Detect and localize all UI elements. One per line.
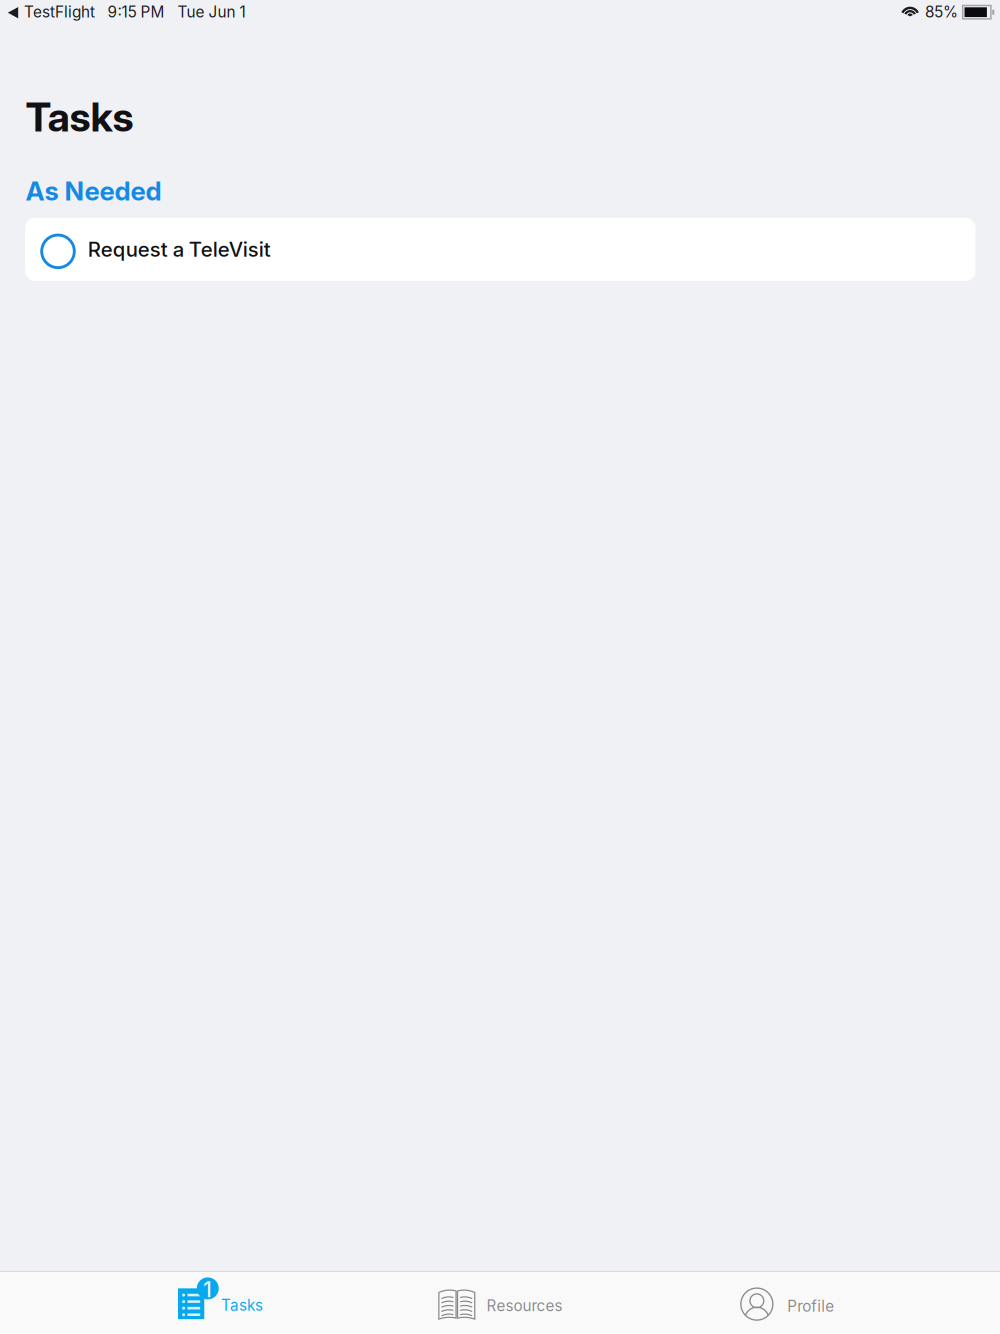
staticText: 9:15 PM: [107, 3, 164, 21]
button[interactable]: Request a TeleVisit: [25, 218, 975, 281]
staticText: TestFlight: [24, 3, 95, 21]
staticText: Request a TeleVisit: [88, 237, 271, 262]
staticText: 85%: [925, 3, 958, 21]
staticText: 1: [203, 1277, 211, 1302]
staticText: Resources: [487, 1297, 563, 1315]
staticText: Profile: [787, 1297, 834, 1315]
button[interactable]: Resources: [438, 1272, 563, 1334]
staticText: Tue Jun 1: [177, 3, 245, 21]
staticText: Tasks: [221, 1296, 263, 1314]
button[interactable]: Profile: [740, 1272, 834, 1334]
button[interactable]: 1: [178, 1272, 263, 1334]
staticText: Tasks: [25, 92, 133, 141]
staticText: As Needed: [25, 175, 161, 207]
